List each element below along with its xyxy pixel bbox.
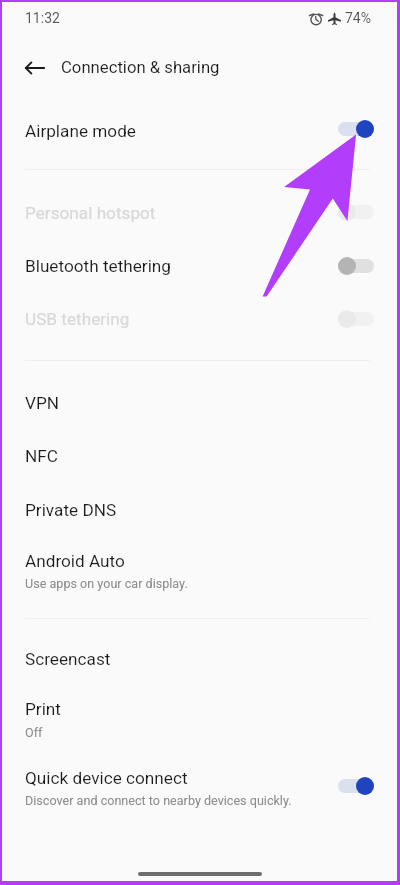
staticText: Bluetooth tethering xyxy=(25,256,171,276)
button[interactable]: Personal hotspot xyxy=(0,187,400,240)
staticText: 74% xyxy=(345,10,371,26)
button[interactable]: NFC xyxy=(0,430,400,483)
staticText: Android Auto xyxy=(25,551,125,571)
button[interactable]: Bluetooth tethering xyxy=(0,240,400,293)
button[interactable]: Print xyxy=(0,685,400,751)
staticText: Use apps on your car display. xyxy=(25,576,188,591)
staticText: NFC xyxy=(25,446,58,466)
button[interactable]: Back xyxy=(20,53,50,83)
button[interactable]: VPN xyxy=(0,377,400,430)
staticText: Airplane mode xyxy=(25,121,136,141)
button[interactable]: Quick device connect xyxy=(0,751,400,817)
staticText: Print xyxy=(25,699,61,719)
button[interactable]: Screencast xyxy=(0,632,400,685)
staticText: Off xyxy=(25,725,43,740)
button[interactable]: Airplane mode xyxy=(0,104,400,158)
staticText: USB tethering xyxy=(25,309,130,329)
staticText: 11:32 xyxy=(25,10,60,26)
staticText: VPN xyxy=(25,393,60,413)
button[interactable]: USB tethering xyxy=(0,293,400,346)
button[interactable]: Private DNS xyxy=(0,483,400,536)
staticText: Personal hotspot xyxy=(25,203,156,223)
staticText: Connection & sharing xyxy=(61,58,220,78)
button[interactable]: Android Auto xyxy=(0,536,400,602)
staticText: Private DNS xyxy=(25,500,117,520)
staticText: Quick device connect xyxy=(25,768,188,788)
staticText: Screencast xyxy=(25,649,111,669)
staticText: Discover and connect to nearby devices q… xyxy=(25,793,292,808)
